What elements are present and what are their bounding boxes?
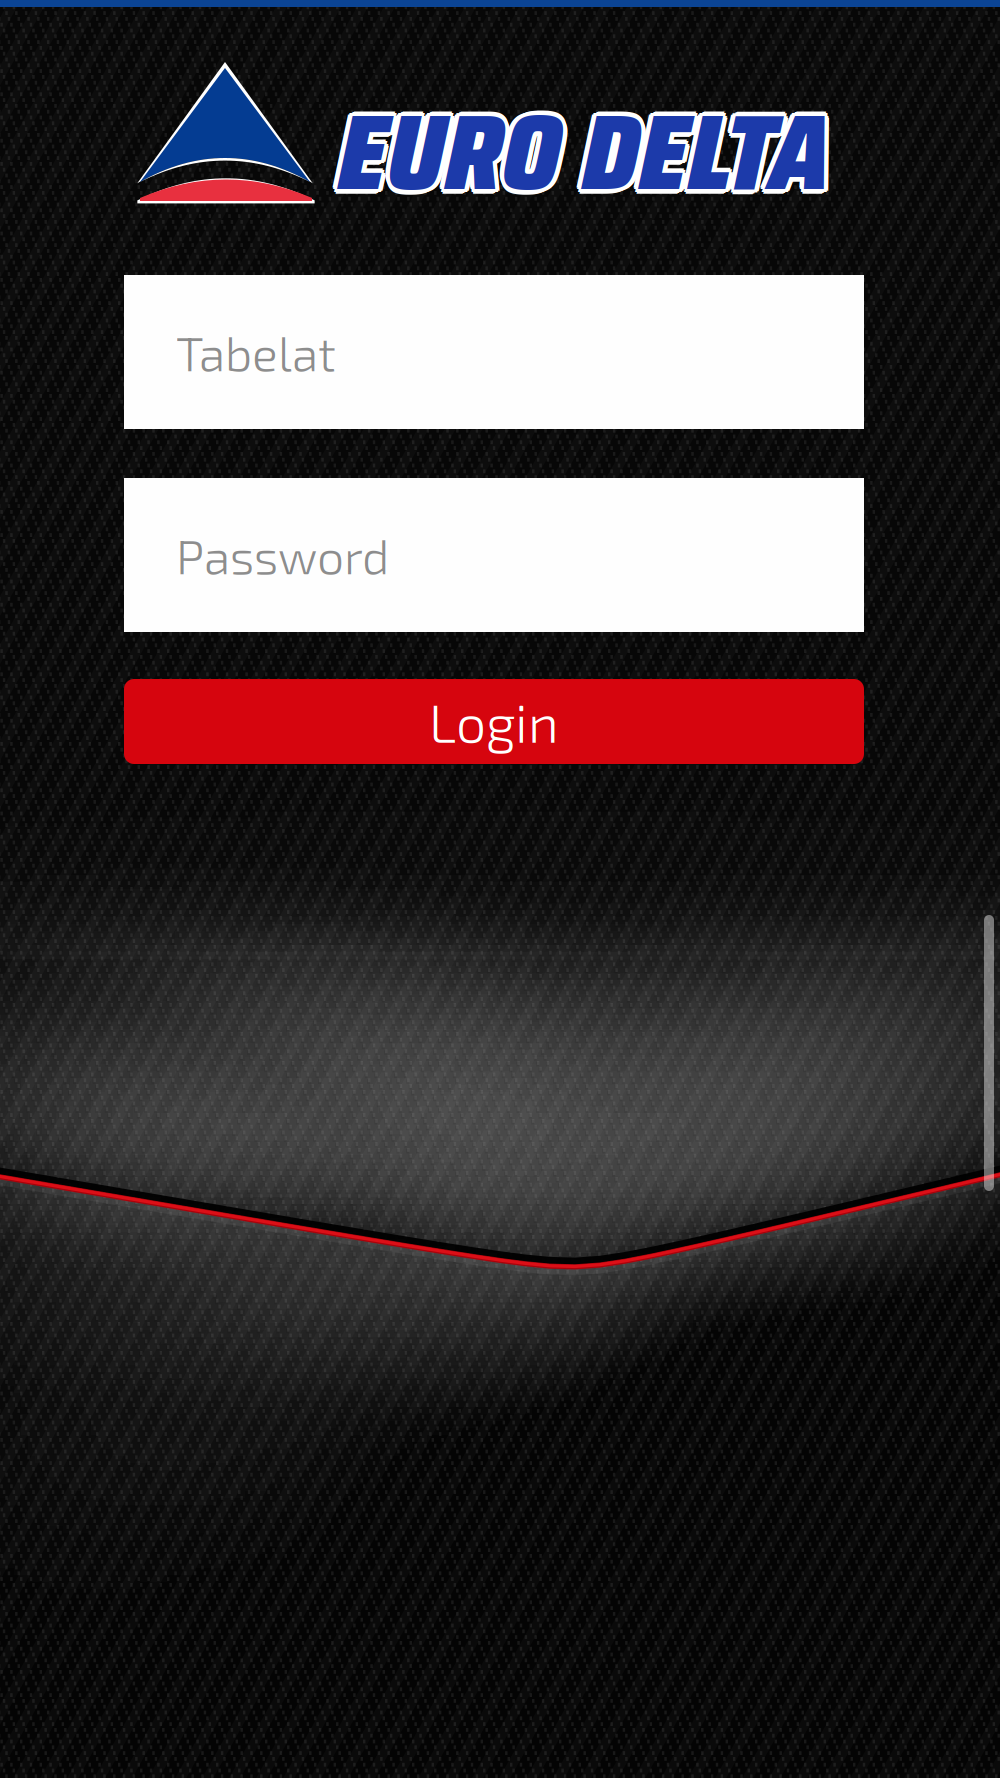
staticText: EURO DELTA	[342, 68, 833, 236]
staticText: EURO DELTA	[341, 71, 832, 239]
button[interactable]: Login	[124, 679, 864, 764]
staticText: EURO DELTA	[341, 65, 832, 233]
staticText: EURO DELTA	[336, 73, 827, 240]
staticText: Password	[176, 526, 389, 584]
staticText: Login	[429, 689, 559, 753]
staticText: EURO DELTA	[338, 72, 829, 240]
staticText: Tabelat	[176, 323, 336, 381]
staticText: EURO DELTA	[343, 70, 834, 237]
staticText: EURO DELTA	[338, 64, 829, 232]
staticText: EURO DELTA	[335, 65, 826, 233]
staticText: EURO DELTA	[333, 66, 824, 234]
staticText: EURO DELTA	[340, 63, 831, 231]
staticText: EURO DELTA	[334, 68, 825, 236]
staticText: EURO DELTA	[338, 68, 829, 236]
button[interactable]: Tabelat	[124, 275, 864, 429]
button[interactable]: Password	[124, 478, 864, 632]
staticText: EURO DELTA	[335, 71, 826, 239]
